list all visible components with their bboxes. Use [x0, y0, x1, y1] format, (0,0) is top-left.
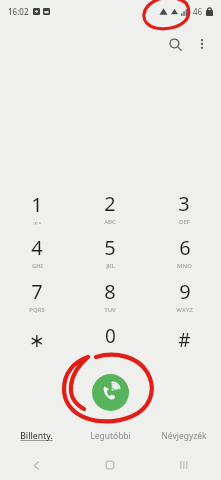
- button[interactable]: 4: [0, 230, 73, 274]
- button[interactable]: 5: [73, 230, 147, 274]
- button[interactable]: Home: [73, 450, 147, 480]
- button[interactable]: Névjegyzék: [147, 424, 221, 448]
- staticText: 3: [178, 190, 190, 217]
- button[interactable]: Billenty.: [0, 424, 73, 448]
- button[interactable]: ∗: [0, 318, 73, 362]
- button[interactable]: Legutóbbi: [73, 424, 147, 448]
- button[interactable]: 7: [0, 274, 73, 318]
- staticText: 0: [105, 323, 116, 349]
- staticText: 2: [104, 190, 116, 217]
- staticText: 8: [104, 278, 116, 305]
- staticText: DEF: [179, 218, 190, 226]
- button[interactable]: Search: [161, 30, 189, 58]
- button[interactable]: 0: [73, 318, 147, 362]
- staticText: 46: [193, 6, 203, 17]
- staticText: MNO: [177, 262, 192, 270]
- button[interactable]: 9: [147, 274, 221, 318]
- button[interactable]: Call: [92, 374, 129, 411]
- staticText: PQRS: [29, 306, 45, 314]
- staticText: 6: [179, 234, 191, 261]
- button[interactable]: Back: [0, 450, 73, 480]
- staticText: #: [178, 327, 191, 353]
- staticText: Névjegyzék: [161, 430, 207, 442]
- staticText: 1: [31, 191, 43, 218]
- button[interactable]: #: [147, 318, 221, 362]
- button[interactable]: More options: [189, 31, 215, 57]
- staticText: Legutóbbi: [90, 430, 131, 442]
- staticText: ABC: [104, 218, 116, 226]
- button[interactable]: 8: [73, 274, 147, 318]
- staticText: TUV: [104, 306, 116, 314]
- staticText: 16:02: [8, 6, 29, 17]
- staticText: 7: [31, 278, 43, 305]
- staticText: ∞∘: [33, 219, 42, 226]
- button[interactable]: 6: [147, 230, 221, 274]
- button[interactable]: 3: [147, 186, 221, 230]
- staticText: 4: [31, 234, 43, 261]
- staticText: WXYZ: [176, 306, 193, 314]
- staticText: 5: [104, 234, 116, 261]
- staticText: 9: [179, 278, 191, 305]
- staticText: Billenty.: [20, 430, 53, 442]
- staticText: GHI: [32, 262, 43, 270]
- button[interactable]: 1: [0, 186, 73, 230]
- button[interactable]: Recents: [147, 450, 221, 480]
- staticText: ∗: [29, 329, 45, 351]
- staticText: +: [109, 350, 113, 358]
- staticText: JKL: [106, 262, 115, 270]
- button[interactable]: 2: [73, 186, 147, 230]
